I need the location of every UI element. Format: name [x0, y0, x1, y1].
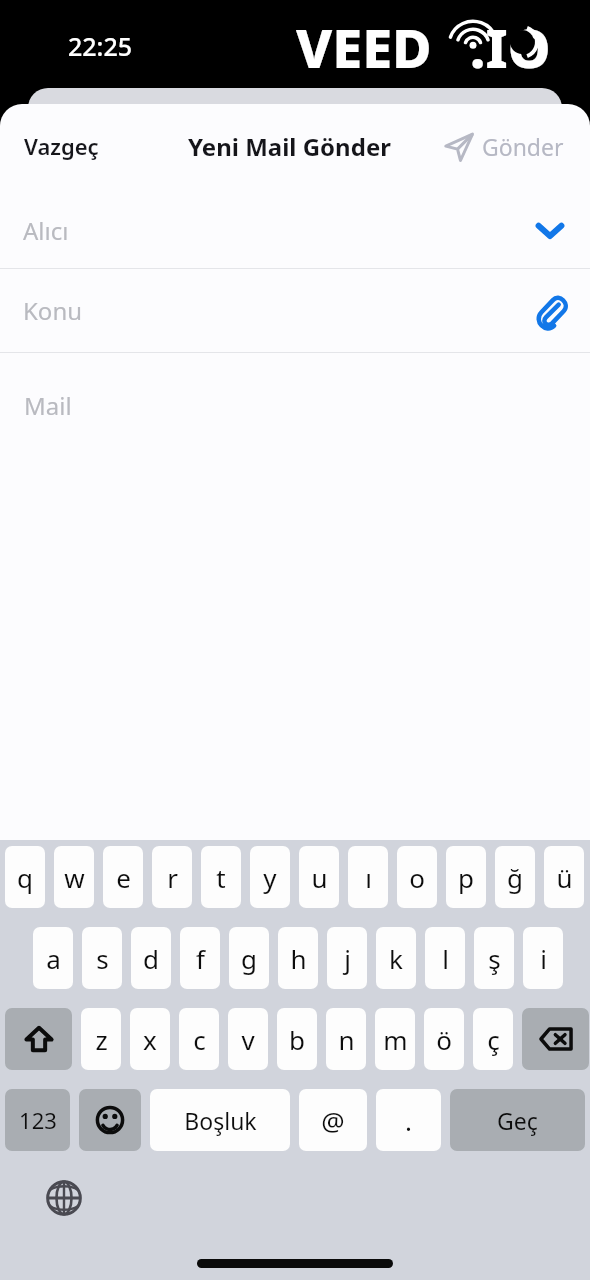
button[interactable]: c	[179, 1008, 219, 1070]
staticText: Mail	[24, 389, 72, 422]
staticText: .IO	[470, 10, 551, 84]
button[interactable]: w	[54, 846, 94, 908]
button[interactable]: d	[131, 927, 171, 989]
button[interactable]: o	[397, 846, 437, 908]
button[interactable]: i	[523, 927, 563, 989]
button[interactable]: g	[229, 927, 269, 989]
button[interactable]: Emoji	[79, 1089, 141, 1151]
staticText: a	[46, 941, 61, 976]
staticText: x	[143, 1022, 157, 1057]
button[interactable]: j	[327, 927, 367, 989]
staticText: m	[383, 1022, 408, 1057]
staticText: r	[167, 860, 178, 895]
staticText: y	[263, 860, 277, 895]
button[interactable]: m	[375, 1008, 415, 1070]
staticText: h	[290, 941, 307, 976]
button[interactable]: b	[277, 1008, 317, 1070]
button[interactable]: Dil değiştir	[38, 1172, 90, 1224]
button[interactable]: ş	[474, 927, 514, 989]
staticText: Yeni Mail Gönder	[188, 130, 391, 163]
staticText: VEED	[296, 10, 432, 84]
button[interactable]: s	[82, 927, 122, 989]
staticText: ğ	[507, 860, 523, 895]
button[interactable]: u	[299, 846, 339, 908]
button[interactable]: Dosya ekle	[529, 289, 573, 333]
staticText: w	[64, 860, 85, 895]
staticText: @	[321, 1103, 345, 1138]
staticText: ö	[436, 1022, 452, 1057]
button[interactable]: Shift	[5, 1008, 72, 1070]
staticText: j	[344, 941, 351, 976]
button[interactable]: .	[376, 1089, 441, 1151]
staticText: Konu	[23, 294, 83, 327]
button[interactable]: t	[201, 846, 241, 908]
staticText: o	[409, 860, 425, 895]
staticText: f	[196, 941, 205, 976]
button[interactable]: q	[5, 846, 45, 908]
staticText: e	[116, 860, 131, 895]
staticText: ı	[365, 860, 372, 895]
button[interactable]: n	[326, 1008, 366, 1070]
staticText: Boşluk	[184, 1105, 257, 1136]
button[interactable]: z	[81, 1008, 121, 1070]
staticText: b	[289, 1022, 305, 1057]
staticText: Alıcı	[23, 214, 69, 247]
button[interactable]: ğ	[495, 846, 535, 908]
staticText: l	[442, 941, 449, 976]
button[interactable]: Konu	[0, 269, 590, 352]
button[interactable]: Boşluk	[150, 1089, 290, 1151]
button[interactable]: Geç	[450, 1089, 585, 1151]
staticText: 22:25	[68, 29, 133, 63]
staticText: ü	[556, 860, 573, 895]
staticText: 123	[19, 1105, 57, 1135]
staticText: k	[389, 941, 403, 976]
button[interactable]: ç	[473, 1008, 513, 1070]
button[interactable]: f	[180, 927, 220, 989]
staticText: n	[338, 1022, 355, 1057]
button[interactable]: x	[130, 1008, 170, 1070]
staticText: d	[143, 941, 159, 976]
staticText: s	[96, 941, 109, 976]
button[interactable]: k	[376, 927, 416, 989]
button[interactable]: e	[103, 846, 143, 908]
staticText: u	[311, 860, 328, 895]
button[interactable]: ö	[424, 1008, 464, 1070]
button[interactable]: ı	[348, 846, 388, 908]
staticText: i	[540, 941, 547, 976]
staticText: Vazgeç	[24, 131, 99, 161]
button[interactable]: @	[299, 1089, 367, 1151]
button[interactable]: h	[278, 927, 318, 989]
staticText: q	[17, 860, 33, 895]
staticText: ç	[487, 1022, 500, 1057]
button[interactable]: Sil	[522, 1008, 589, 1070]
staticText: p	[458, 860, 474, 895]
staticText: v	[241, 1022, 255, 1057]
button[interactable]: v	[228, 1008, 268, 1070]
button[interactable]: 123	[5, 1089, 70, 1151]
button[interactable]: r	[152, 846, 192, 908]
button[interactable]: p	[446, 846, 486, 908]
button[interactable]: Alıcıları genişlet	[528, 208, 572, 252]
button[interactable]: ü	[544, 846, 584, 908]
staticText: ş	[488, 941, 501, 976]
staticText: g	[241, 941, 257, 976]
staticText: Geç	[497, 1105, 538, 1136]
button[interactable]: Vazgeç	[12, 123, 111, 169]
button[interactable]: y	[250, 846, 290, 908]
button[interactable]: Gönder	[434, 123, 574, 170]
staticText: z	[95, 1022, 108, 1057]
button[interactable]: l	[425, 927, 465, 989]
staticText: Gönder	[482, 131, 564, 162]
staticText: .	[405, 1103, 412, 1138]
staticText: t	[216, 860, 226, 895]
button[interactable]: a	[33, 927, 73, 989]
staticText: c	[193, 1022, 206, 1057]
button[interactable]: Alıcı	[0, 188, 590, 272]
